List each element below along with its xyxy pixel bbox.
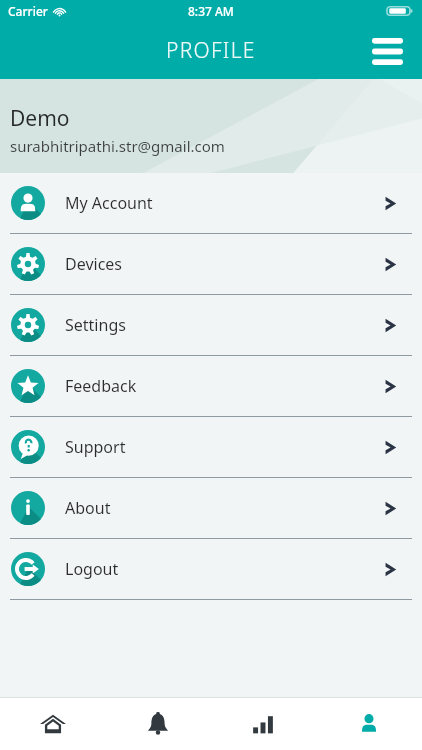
- button[interactable]: Settings: [0, 295, 422, 355]
- staticText: surabhitripathi.str@gmail.com: [10, 136, 225, 156]
- staticText: My Account: [65, 192, 153, 214]
- staticText: PROFILE: [166, 36, 256, 65]
- staticText: 8:37 AM: [188, 3, 234, 19]
- button[interactable]: Logout: [0, 539, 422, 599]
- button[interactable]: Statistics: [210, 698, 316, 750]
- staticText: Demo: [10, 104, 70, 133]
- staticText: About: [65, 497, 111, 519]
- staticText: Devices: [65, 253, 123, 275]
- staticText: Support: [65, 436, 126, 458]
- button[interactable]: Devices: [0, 234, 422, 294]
- button[interactable]: My Account: [0, 173, 422, 233]
- staticText: Logout: [65, 558, 119, 580]
- staticText: Feedback: [65, 375, 137, 397]
- button[interactable]: Notifications: [105, 698, 210, 750]
- button[interactable]: Profile: [316, 698, 422, 750]
- button[interactable]: Support: [0, 417, 422, 477]
- button[interactable]: About: [0, 478, 422, 538]
- button[interactable]: Home: [0, 698, 105, 750]
- staticText: Carrier: [8, 3, 48, 19]
- staticText: Settings: [65, 314, 126, 336]
- button[interactable]: Menu: [364, 28, 410, 74]
- button[interactable]: Feedback: [0, 356, 422, 416]
